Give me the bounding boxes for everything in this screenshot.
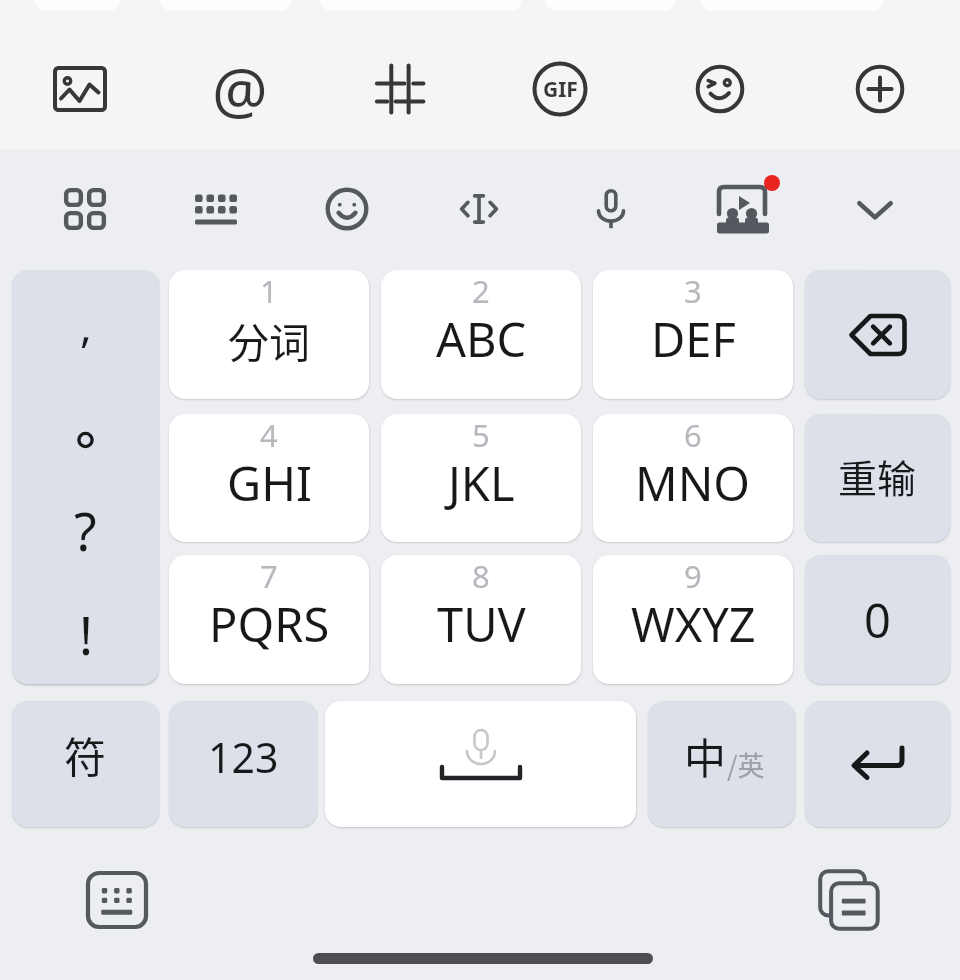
button[interactable]: Hashtag <box>320 18 480 160</box>
button[interactable]: Live video <box>677 150 809 268</box>
button[interactable]: Keyboard layout <box>150 150 281 268</box>
staticText: , <box>80 295 92 355</box>
button[interactable]: Zero <box>805 555 950 684</box>
staticText: 1 <box>260 270 278 312</box>
staticText: JKL <box>448 451 515 515</box>
staticText: ! <box>79 599 93 670</box>
button[interactable]: Key 8 TUV <box>381 555 581 684</box>
button[interactable]: Key 9 WXYZ <box>593 555 793 684</box>
button[interactable]: Space <box>325 701 636 827</box>
button[interactable]: Key 7 PQRS <box>169 555 369 684</box>
staticText: 8 <box>472 555 490 597</box>
button[interactable]: Apps <box>19 150 150 268</box>
button[interactable]: Key 1 分词 <box>169 270 369 399</box>
staticText: ABC <box>436 307 527 371</box>
staticText: 2 <box>472 270 490 312</box>
staticText: GHI <box>227 451 312 515</box>
button[interactable]: Edit cursor <box>413 150 545 268</box>
staticText: PQRS <box>209 592 330 656</box>
button[interactable]: Clipboard <box>815 866 883 934</box>
staticText: 0 <box>864 588 891 652</box>
button[interactable]: Hide keyboard <box>809 150 941 268</box>
staticText: WXYZ <box>631 592 756 656</box>
staticText: /英 <box>727 745 765 784</box>
button[interactable]: Symbols <box>12 701 159 827</box>
button[interactable]: More <box>800 18 960 160</box>
button[interactable]: Re-enter <box>805 414 950 542</box>
button[interactable]: Mention <box>160 18 320 160</box>
staticText: GIF <box>543 75 578 104</box>
button[interactable]: Image <box>0 18 160 160</box>
button[interactable]: Backspace <box>805 270 950 399</box>
button[interactable]: Chinese English toggle <box>648 701 795 827</box>
staticText: DEF <box>651 307 736 371</box>
button[interactable]: Switch keyboard <box>83 866 151 934</box>
staticText: 4 <box>260 414 278 456</box>
staticText: 3 <box>684 270 702 312</box>
button[interactable]: Key 5 JKL <box>381 414 581 542</box>
button[interactable]: Emoji <box>281 150 413 268</box>
staticText: 9 <box>684 555 702 597</box>
button[interactable]: Numbers <box>169 701 317 827</box>
button[interactable]: Key 4 GHI <box>169 414 369 542</box>
staticText: 6 <box>684 414 702 456</box>
staticText: 分词 <box>228 310 310 369</box>
staticText: @ <box>212 47 268 131</box>
staticText: TUV <box>437 592 526 656</box>
button[interactable]: Key 2 ABC <box>381 270 581 399</box>
staticText: 5 <box>472 414 490 456</box>
staticText: 符 <box>64 724 107 785</box>
staticText: 中 <box>684 725 727 786</box>
button[interactable]: Sticker <box>640 18 800 160</box>
button[interactable]: Enter <box>805 701 950 827</box>
button[interactable]: Punctuation <box>12 270 159 684</box>
staticText: MNO <box>635 451 751 515</box>
staticText: ? <box>74 495 97 566</box>
staticText: 123 <box>208 729 279 785</box>
staticText: 7 <box>260 555 278 597</box>
staticText: 重输 <box>838 448 917 504</box>
button[interactable]: Voice input <box>545 150 677 268</box>
button[interactable]: GIF <box>480 18 640 160</box>
button[interactable]: Key 3 DEF <box>593 270 793 399</box>
button[interactable]: Key 6 MNO <box>593 414 793 542</box>
